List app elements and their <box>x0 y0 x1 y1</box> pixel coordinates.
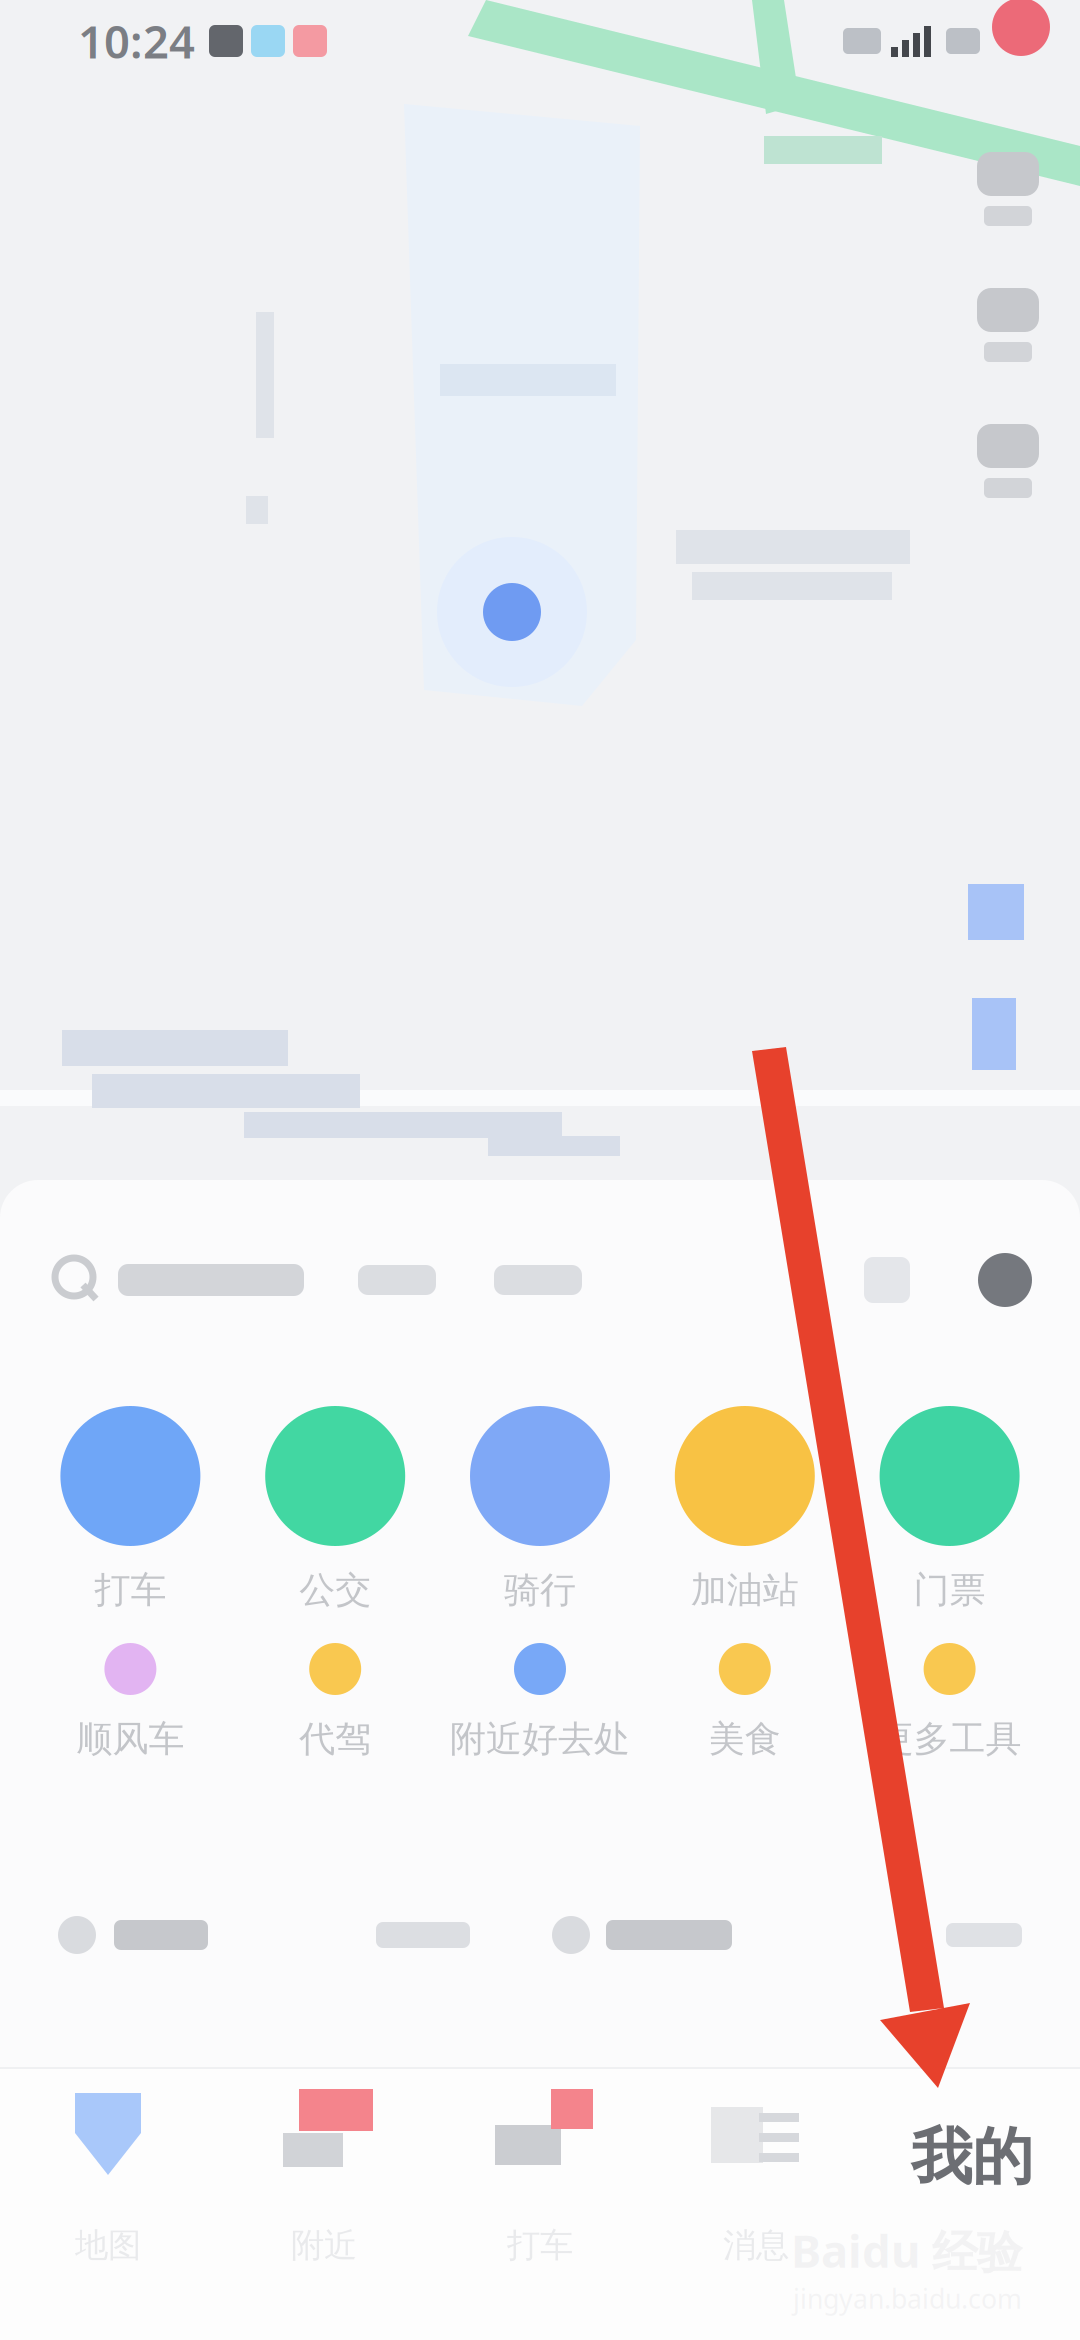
button[interactable] <box>358 1200 436 1360</box>
button[interactable]: 门票 <box>847 1340 1052 1620</box>
button[interactable]: 顺风车 <box>28 1620 233 1760</box>
staticText: 骑行 <box>504 1568 576 1612</box>
staticText: 附近 <box>291 2225 357 2266</box>
button[interactable]: My account <box>978 1200 1032 1360</box>
button[interactable]: 打车 <box>28 1340 233 1620</box>
staticText: 美食 <box>709 1717 781 1761</box>
staticText: 10:24 <box>78 11 195 71</box>
button[interactable]: 美食 <box>642 1620 847 1760</box>
button[interactable]: 我的 <box>864 2067 1080 2340</box>
button[interactable]: Locate me <box>956 424 1060 498</box>
button[interactable]: 附近 <box>216 2067 432 2340</box>
button[interactable] <box>376 1904 470 1966</box>
staticText: 顺风车 <box>76 1717 184 1761</box>
button[interactable] <box>50 1200 304 1360</box>
staticText: 消息 <box>723 2225 789 2266</box>
staticText: 我的 <box>911 2119 1033 2195</box>
button[interactable]: 消息 <box>648 2067 864 2340</box>
button[interactable]: 代驾 <box>233 1620 438 1760</box>
button[interactable]: 加油站 <box>642 1340 847 1620</box>
staticText: 加油站 <box>691 1568 799 1612</box>
button[interactable] <box>552 1904 732 1966</box>
button[interactable]: 更多工具 <box>847 1620 1052 1760</box>
staticText: Baidu 经验 <box>791 2220 1022 2281</box>
button[interactable]: 骑行 <box>438 1340 642 1620</box>
button[interactable] <box>58 1904 208 1966</box>
button[interactable]: Map layers <box>956 152 1060 226</box>
staticText: jingyan.baidu.com <box>793 2281 1022 2316</box>
button[interactable] <box>946 1904 1022 1966</box>
staticText: 附近好去处 <box>450 1717 630 1761</box>
staticText: 打车 <box>94 1568 166 1612</box>
staticText: 地图 <box>75 2225 141 2266</box>
button[interactable]: Scan QR code <box>864 1200 910 1360</box>
button[interactable]: 附近好去处 <box>438 1620 642 1760</box>
staticText: 打车 <box>507 2225 573 2266</box>
staticText: 公交 <box>299 1568 371 1612</box>
staticText: 门票 <box>914 1568 986 1612</box>
button[interactable]: Traffic report <box>956 288 1060 362</box>
button[interactable] <box>494 1200 582 1360</box>
staticText: 代驾 <box>299 1717 371 1761</box>
button[interactable]: 公交 <box>233 1340 438 1620</box>
staticText: 更多工具 <box>878 1717 1022 1761</box>
button[interactable]: 打车 <box>432 2067 648 2340</box>
button[interactable]: 地图 <box>0 2067 216 2340</box>
